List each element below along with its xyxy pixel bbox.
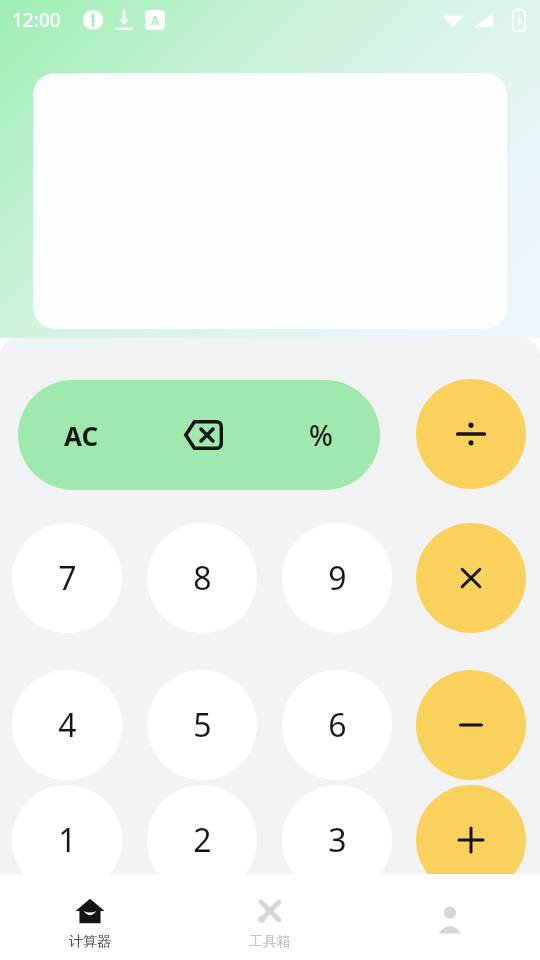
button[interactable]: Backspace	[144, 380, 262, 490]
staticText: 1	[58, 818, 77, 862]
button[interactable]	[360, 892, 540, 942]
staticText: 8	[193, 556, 212, 600]
button[interactable]: 4	[12, 670, 122, 780]
button[interactable]: Divide	[416, 379, 526, 489]
staticText: 4	[58, 703, 77, 747]
button[interactable]: 工具箱	[180, 883, 360, 951]
button[interactable]: 9	[282, 523, 392, 633]
button[interactable]: %	[262, 380, 380, 490]
staticText: 3	[328, 818, 347, 862]
staticText: 工具箱	[249, 933, 291, 951]
button[interactable]: Multiply	[416, 523, 526, 633]
staticText: 7	[58, 556, 77, 600]
staticText: 5	[193, 703, 212, 747]
button[interactable]: 8	[147, 523, 257, 633]
staticText: 2	[193, 818, 212, 862]
staticText: 6	[328, 703, 347, 747]
button[interactable]: 7	[12, 523, 122, 633]
button[interactable]: 计算器	[0, 883, 180, 951]
button[interactable]: AC	[18, 380, 144, 490]
button[interactable]: Plus	[416, 785, 526, 874]
button[interactable]: Minus	[416, 670, 526, 780]
staticText: 9	[328, 556, 347, 600]
staticText: %	[309, 416, 333, 454]
staticText: 计算器	[69, 933, 111, 951]
button[interactable]: 6	[282, 670, 392, 780]
button[interactable]: 1	[12, 785, 122, 874]
staticText: 12:00	[12, 7, 61, 33]
staticText: A	[151, 12, 160, 28]
button[interactable]: 5	[147, 670, 257, 780]
staticText: AC	[64, 418, 99, 453]
button[interactable]: 2	[147, 785, 257, 874]
button[interactable]: 3	[282, 785, 392, 874]
